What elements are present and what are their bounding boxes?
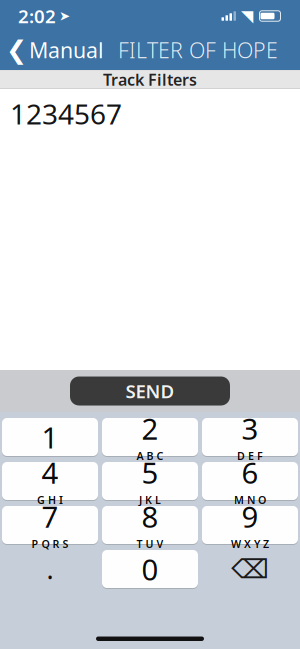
button[interactable]: SEND [70,376,230,405]
button[interactable]: Delete [202,549,298,589]
staticText: 5 [141,453,158,492]
staticText: 1234567 [10,95,122,132]
staticText: Track Filters [103,69,197,90]
button[interactable]: 5 [102,461,198,501]
staticText: ❮ [6,36,27,64]
button[interactable]: 4 [2,461,98,501]
button[interactable]: Period [2,549,98,589]
button[interactable]: 8 [102,505,198,545]
button[interactable]: 1 [2,417,98,457]
staticText: 8 [141,497,158,536]
staticText: M N O [234,493,266,507]
staticText: 3 [241,409,258,448]
staticText: ⌫ [231,554,269,584]
staticText: ➤ [59,8,70,23]
staticText: FILTER OF HOPE [118,36,278,64]
button[interactable]: 2 [102,417,198,457]
staticText: ◥ [241,7,253,25]
button[interactable]: ❮ [0,30,104,70]
staticText: 4 [41,453,58,492]
staticText: . [46,551,53,587]
staticText: 2 [141,409,158,448]
button[interactable]: 7 [2,505,98,545]
button[interactable]: 9 [202,505,298,545]
staticText: A B C [136,449,163,463]
staticText: G H I [37,493,63,507]
staticText: 9 [241,497,258,536]
staticText: T U V [136,537,163,551]
button[interactable]: 0 [102,549,198,589]
staticText: 0 [141,549,158,588]
staticText: W X Y Z [231,537,269,551]
staticText: 1 [41,417,58,456]
staticText: J K L [139,493,161,507]
staticText: D E F [237,449,263,463]
staticText: 7 [41,497,58,536]
staticText: 6 [241,453,258,492]
staticText: P Q R S [31,537,68,551]
button[interactable]: 3 [202,417,298,457]
staticText: Manual [29,36,104,64]
staticText: 2:02 [18,4,56,28]
staticText: SEND [125,379,174,403]
button[interactable]: 6 [202,461,298,501]
